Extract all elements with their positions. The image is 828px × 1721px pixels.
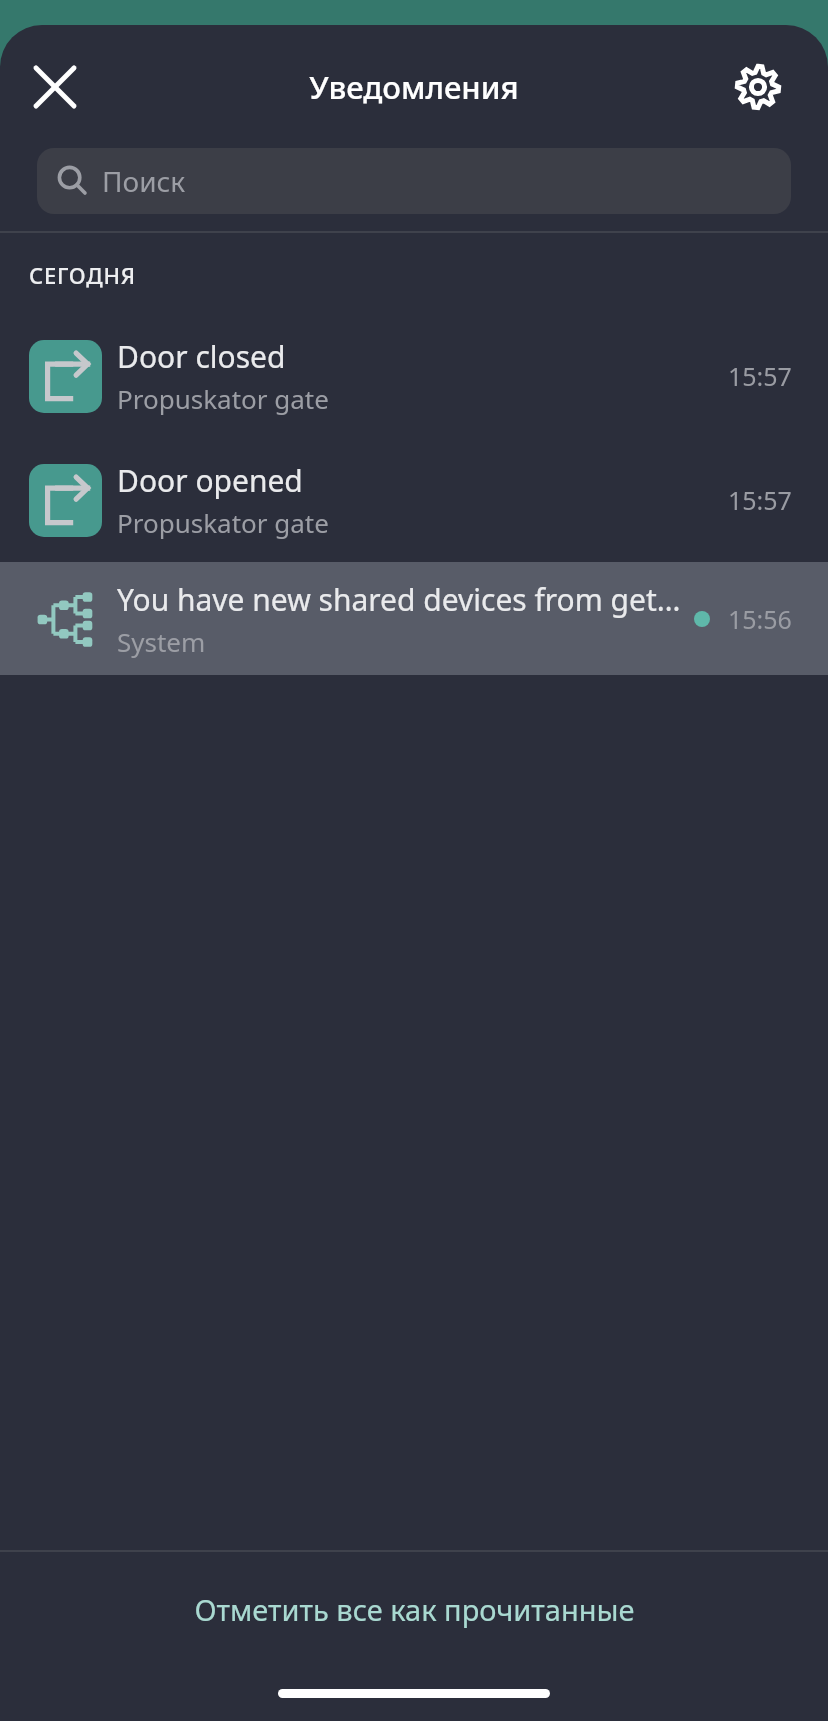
button[interactable]: You have new shared devices from get… bbox=[0, 562, 828, 675]
staticText: System bbox=[117, 624, 206, 659]
staticText: You have new shared devices from get… bbox=[117, 579, 681, 620]
staticText: 15:57 bbox=[728, 359, 792, 393]
staticText: Отметить все как прочитанные bbox=[194, 1590, 635, 1629]
button[interactable]: Door closed bbox=[0, 314, 828, 438]
staticText: 15:56 bbox=[728, 602, 792, 636]
button[interactable]: Door opened bbox=[0, 438, 828, 562]
button[interactable]: Close bbox=[18, 50, 92, 124]
staticText: Поиск bbox=[102, 162, 186, 200]
staticText: Propuskator gate bbox=[117, 381, 329, 416]
staticText: Propuskator gate bbox=[117, 505, 329, 540]
staticText: Door opened bbox=[117, 460, 303, 501]
button[interactable]: Отметить все как прочитанные bbox=[0, 1552, 828, 1667]
button[interactable]: Поиск bbox=[37, 148, 791, 214]
staticText: Door closed bbox=[117, 336, 286, 377]
button[interactable]: Settings bbox=[721, 50, 795, 124]
staticText: Уведомления bbox=[309, 66, 519, 108]
staticText: СЕГОДНЯ bbox=[29, 260, 136, 290]
staticText: 15:57 bbox=[728, 483, 792, 517]
